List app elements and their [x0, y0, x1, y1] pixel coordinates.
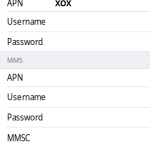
button[interactable]: Password — [0, 32, 150, 51]
button[interactable]: Username — [0, 87, 150, 107]
staticText: XOX — [55, 0, 71, 8]
staticText: APN — [7, 0, 23, 8]
staticText: Password — [7, 112, 43, 123]
staticText: APN — [7, 72, 23, 83]
button[interactable]: APN — [0, 0, 150, 11]
staticText: Username — [7, 92, 46, 102]
staticText: MMS — [7, 56, 23, 65]
button[interactable]: APN — [0, 69, 150, 87]
button[interactable]: MMSC — [0, 128, 150, 149]
staticText: Username — [7, 16, 46, 27]
staticText: MMSC — [7, 133, 30, 143]
button[interactable]: Password — [0, 108, 150, 127]
staticText: Password — [7, 37, 43, 47]
button[interactable]: Username — [0, 12, 150, 32]
